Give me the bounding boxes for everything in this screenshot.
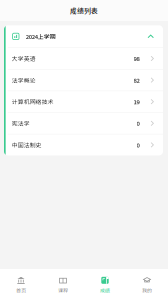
staticText: 大学英语 [12,54,36,63]
staticText: 我的 [142,286,152,294]
staticText: 0 [137,119,140,128]
staticText: 宪法学 [12,119,30,128]
staticText: 0 [137,141,140,149]
staticText: 成绩列表 [70,6,98,15]
button[interactable]: 我的 [126,269,168,300]
button[interactable]: 大学英语 [6,48,163,69]
staticText: 2024上学期 [26,32,56,41]
button[interactable]: 课程 [42,269,84,300]
staticText: 首页 [16,286,26,294]
button[interactable]: 计算机网络技术 [6,91,163,112]
staticText: 法学概论 [12,76,36,84]
staticText: 成绩 [100,286,110,294]
button[interactable]: 首页 [0,269,42,300]
staticText: 计算机网络技术 [12,97,54,106]
staticText: 19 [134,97,140,106]
staticText: 82 [134,76,140,84]
button[interactable]: 法学概论 [6,70,163,91]
staticText: 课程 [58,286,68,294]
staticText: 98 [134,54,140,63]
button[interactable]: 成绩 [84,269,126,300]
button[interactable]: 中国法制史 [6,134,163,155]
staticText: 中国法制史 [12,141,42,149]
button[interactable]: 宪法学 [6,113,163,134]
button[interactable]: 2024上学期 [6,25,163,47]
